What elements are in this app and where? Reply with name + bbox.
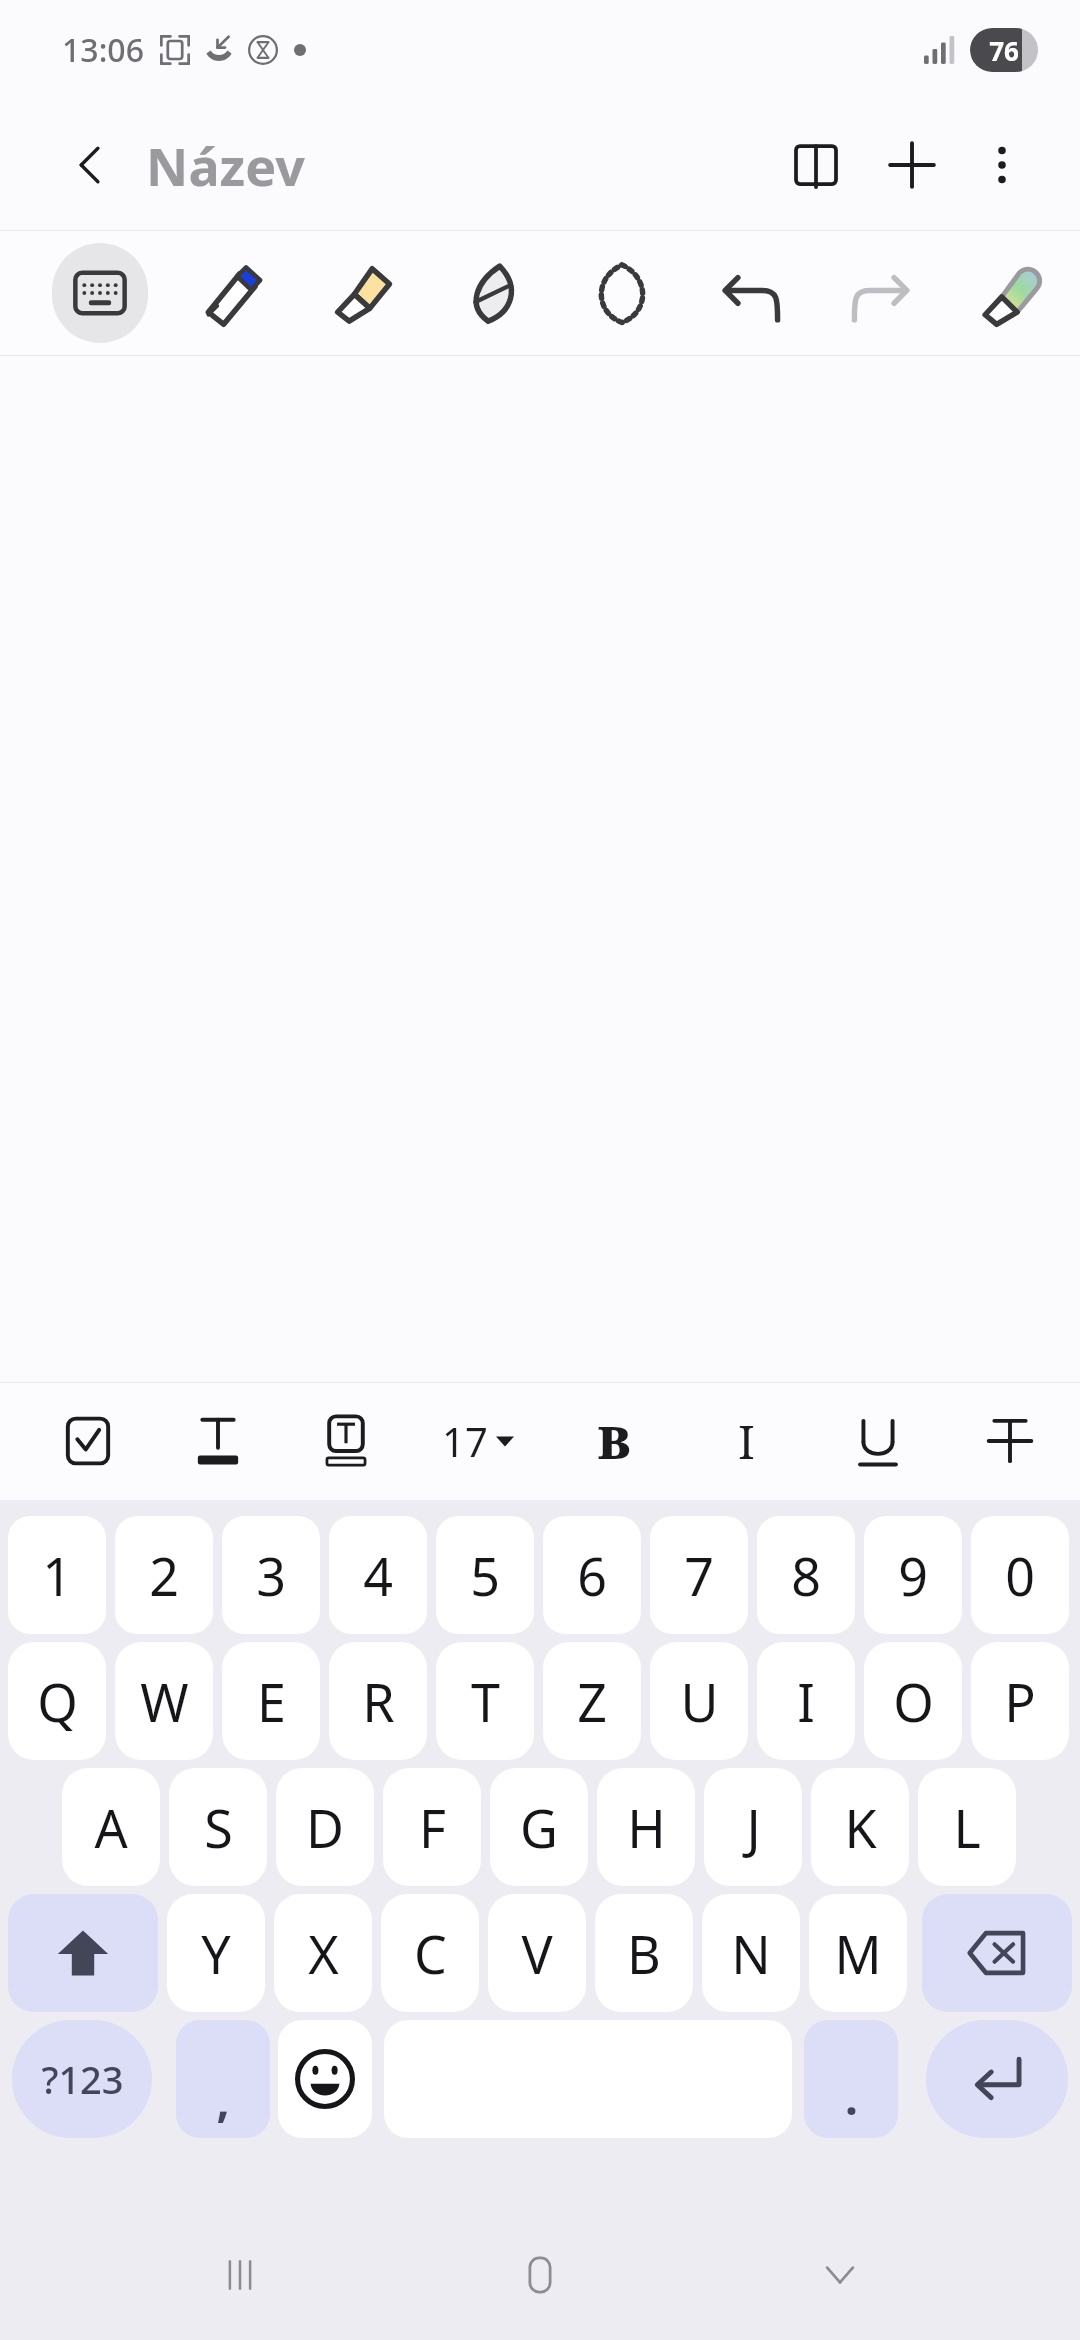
staticText: 13:06 <box>62 28 144 72</box>
button[interactable]: 5 <box>436 1516 534 1634</box>
button[interactable]: O <box>864 1642 962 1760</box>
button[interactable]: Italic <box>684 1382 808 1500</box>
button[interactable]: P <box>971 1642 1069 1760</box>
button[interactable]: Pen <box>172 231 292 355</box>
staticText: I <box>797 1666 815 1737</box>
button[interactable]: Shift <box>8 1894 158 2012</box>
button[interactable]: Backspace <box>922 1894 1072 2012</box>
button[interactable]: . <box>804 2020 898 2138</box>
button[interactable]: ?123 <box>12 2020 152 2138</box>
button[interactable]: Bold <box>552 1382 676 1500</box>
staticText: G <box>520 1792 558 1863</box>
staticText: 7 <box>684 1540 714 1611</box>
button[interactable]: Emoji <box>278 2020 372 2138</box>
staticText: C <box>414 1918 447 1989</box>
button[interactable]: B <box>595 1894 693 2012</box>
button[interactable]: Z <box>543 1642 641 1760</box>
button[interactable]: J <box>704 1768 802 1886</box>
button[interactable]: T <box>436 1642 534 1760</box>
button[interactable]: G <box>490 1768 588 1886</box>
button[interactable]: K <box>811 1768 909 1886</box>
button[interactable]: L <box>918 1768 1016 1886</box>
staticText: I <box>738 1410 755 1473</box>
staticText: O <box>893 1666 934 1737</box>
button[interactable]: H <box>597 1768 695 1886</box>
button[interactable]: M <box>809 1894 907 2012</box>
button[interactable]: 4 <box>329 1516 427 1634</box>
button[interactable]: More options <box>960 123 1044 207</box>
staticText: Název <box>146 130 305 201</box>
button[interactable]: , <box>176 2020 270 2138</box>
button[interactable]: Add <box>864 117 960 213</box>
staticText: Y <box>201 1918 231 1989</box>
button[interactable]: Y <box>167 1894 265 2012</box>
button[interactable]: Checklist <box>26 1382 150 1500</box>
button[interactable]: Strikethrough <box>948 1382 1072 1500</box>
button[interactable]: Reading view <box>768 117 864 213</box>
staticText: P <box>1004 1666 1036 1737</box>
button[interactable]: 2 <box>115 1516 213 1634</box>
button[interactable]: 0 <box>971 1516 1069 1634</box>
button[interactable]: Highlighter <box>302 231 422 355</box>
button[interactable]: W <box>115 1642 213 1760</box>
button[interactable]: X <box>274 1894 372 2012</box>
staticText: 17 <box>442 1414 488 1468</box>
staticText: , <box>216 2068 230 2131</box>
button[interactable]: Text highlight <box>284 1382 408 1500</box>
staticText: V <box>521 1918 553 1989</box>
button[interactable]: Font size <box>416 1382 540 1500</box>
button[interactable]: Keyboard <box>40 231 160 355</box>
button[interactable]: D <box>276 1768 374 1886</box>
button[interactable]: U <box>650 1642 748 1760</box>
button[interactable]: Q <box>8 1642 106 1760</box>
button[interactable]: Lasso select <box>562 231 682 355</box>
button[interactable]: Home <box>480 2215 600 2335</box>
button[interactable]: 3 <box>222 1516 320 1634</box>
staticText: L <box>953 1792 981 1863</box>
button[interactable]: F <box>383 1768 481 1886</box>
staticText: K <box>844 1792 877 1863</box>
staticText: H <box>627 1792 666 1863</box>
staticText: F <box>419 1792 446 1863</box>
staticText: 9 <box>898 1540 928 1611</box>
button[interactable]: N <box>702 1894 800 2012</box>
staticText: 76 <box>989 33 1019 68</box>
staticText: J <box>746 1792 761 1863</box>
staticText: 3 <box>256 1540 286 1611</box>
staticText: S <box>204 1792 233 1863</box>
button[interactable]: 9 <box>864 1516 962 1634</box>
button[interactable]: V <box>488 1894 586 2012</box>
staticText: U <box>680 1666 719 1737</box>
button[interactable]: R <box>329 1642 427 1760</box>
button[interactable]: E <box>222 1642 320 1760</box>
staticText: B <box>597 1410 631 1473</box>
button[interactable]: 6 <box>543 1516 641 1634</box>
staticText: R <box>362 1666 395 1737</box>
button[interactable]: Colour pen <box>952 231 1072 355</box>
button[interactable]: 8 <box>757 1516 855 1634</box>
staticText: . <box>845 2066 858 2129</box>
button[interactable]: 7 <box>650 1516 748 1634</box>
button[interactable]: Redo <box>820 231 940 355</box>
staticText: W <box>140 1666 189 1737</box>
button[interactable]: Back <box>54 129 126 201</box>
button[interactable]: Hide keyboard <box>780 2215 900 2335</box>
staticText: T <box>471 1666 500 1737</box>
button[interactable]: C <box>381 1894 479 2012</box>
staticText: X <box>308 1918 339 1989</box>
button[interactable]: Undo <box>692 231 812 355</box>
staticText: M <box>834 1918 882 1989</box>
button[interactable]: Text colour <box>156 1382 280 1500</box>
staticText: 4 <box>363 1540 393 1611</box>
button[interactable]: S <box>169 1768 267 1886</box>
button[interactable]: 1 <box>8 1516 106 1634</box>
staticText: 6 <box>577 1540 607 1611</box>
button[interactable]: Eraser <box>432 231 552 355</box>
staticText: 1 <box>42 1540 72 1611</box>
button[interactable]: Recent apps <box>180 2215 300 2335</box>
button[interactable]: A <box>62 1768 160 1886</box>
button[interactable]: I <box>757 1642 855 1760</box>
button[interactable]: Enter <box>926 2020 1068 2138</box>
button[interactable]: Underline <box>816 1382 940 1500</box>
